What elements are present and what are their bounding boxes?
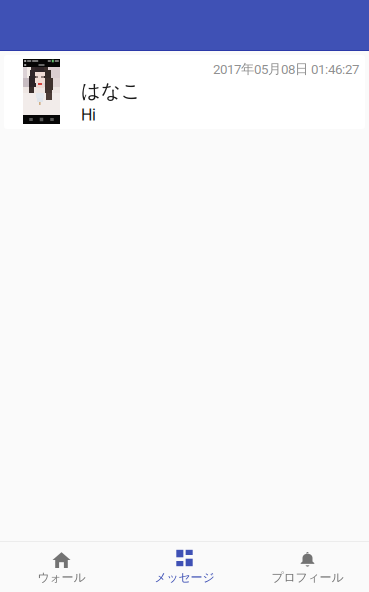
button[interactable]: プロフィール <box>246 542 369 592</box>
button[interactable]: メッセージ <box>123 542 246 592</box>
staticText: はなこ <box>81 79 141 103</box>
button[interactable]: ウォール <box>0 542 123 592</box>
staticText: 2017年05月08日 01:46:27 <box>213 61 359 77</box>
staticText: Hi <box>81 106 96 124</box>
staticText: プロフィール <box>271 570 343 585</box>
staticText: ウォール <box>37 570 85 585</box>
staticText: メッセージ <box>154 570 214 585</box>
button[interactable]: 2017年05月08日 01:46:27 <box>4 55 365 129</box>
